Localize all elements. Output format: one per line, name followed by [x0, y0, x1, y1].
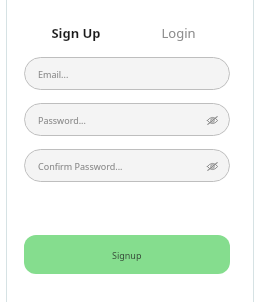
button[interactable]: Sign Up [24, 24, 127, 42]
button[interactable]: Show password [204, 112, 220, 128]
button[interactable]: Show confirm password [204, 158, 220, 174]
staticText: Password... [38, 114, 86, 126]
staticText: Sign Up [51, 24, 101, 42]
staticText: Confirm Password... [38, 160, 123, 172]
button[interactable]: Email... [24, 57, 230, 90]
button[interactable]: Signup [24, 235, 230, 274]
button[interactable]: Confirm Password... [24, 149, 230, 182]
staticText: Login [161, 24, 196, 42]
button[interactable]: Password... [24, 103, 230, 136]
button[interactable]: Login [127, 24, 230, 42]
staticText: Email... [38, 68, 69, 80]
staticText: Signup [112, 249, 142, 261]
